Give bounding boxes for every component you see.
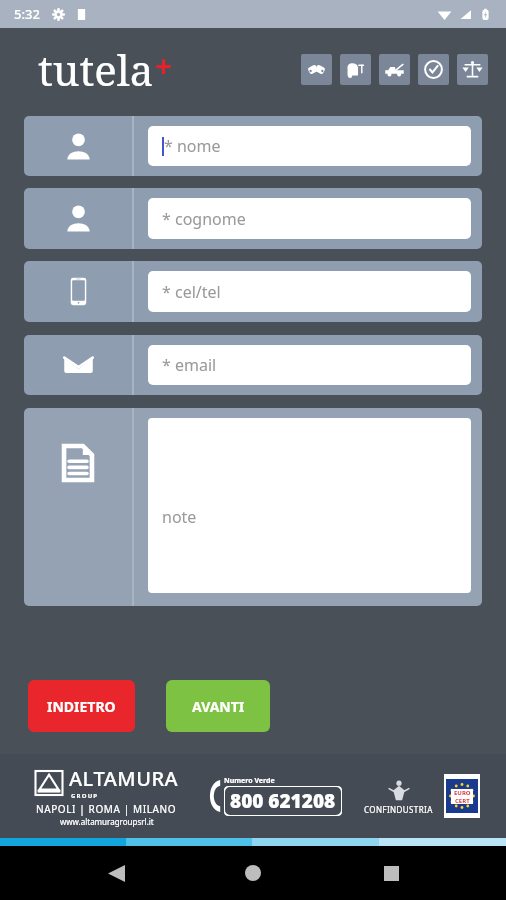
staticText: + xyxy=(155,45,173,86)
staticText: * cel/tel xyxy=(162,281,221,303)
button[interactable]: * cel/tel xyxy=(24,261,482,322)
staticText: * email xyxy=(162,354,217,376)
staticText: NAPOLI | ROMA | MILANO xyxy=(36,802,177,816)
button[interactable]: note xyxy=(24,408,482,606)
button[interactable]: INDIETRO xyxy=(28,680,135,732)
button[interactable]: Infortuni xyxy=(301,54,332,85)
staticText: * cognome xyxy=(162,208,246,230)
button[interactable]: * nome xyxy=(24,116,482,176)
button[interactable]: Home xyxy=(231,851,275,895)
staticText: * nome xyxy=(164,135,221,157)
staticText: 800 621208 xyxy=(230,788,336,814)
staticText: www.altamuragroupsrl.it xyxy=(60,816,154,827)
staticText: CERT xyxy=(455,797,470,804)
button[interactable]: AVANTI xyxy=(166,680,270,732)
staticText: INDIETRO xyxy=(47,697,116,716)
staticText: AVANTI xyxy=(192,697,245,716)
button[interactable]: Soccorso xyxy=(379,54,410,85)
staticText: CONFINDUSTRIA xyxy=(364,804,433,815)
staticText: 5:32 xyxy=(14,5,40,23)
button[interactable]: * email xyxy=(24,335,482,395)
button[interactable]: Back xyxy=(94,851,138,895)
staticText: tutela xyxy=(38,41,154,98)
button[interactable]: Incidente xyxy=(340,54,371,85)
button[interactable]: * cognome xyxy=(24,188,482,249)
staticText: GROUP xyxy=(71,792,99,800)
button[interactable]: Recents xyxy=(369,851,413,895)
button[interactable]: Assistenza xyxy=(418,54,449,85)
staticText: ALTAMURA xyxy=(69,765,179,792)
staticText: EURO xyxy=(454,789,471,797)
staticText: Numero Verde xyxy=(224,776,275,786)
staticText: note xyxy=(162,506,197,528)
button[interactable]: Legale xyxy=(457,54,488,85)
